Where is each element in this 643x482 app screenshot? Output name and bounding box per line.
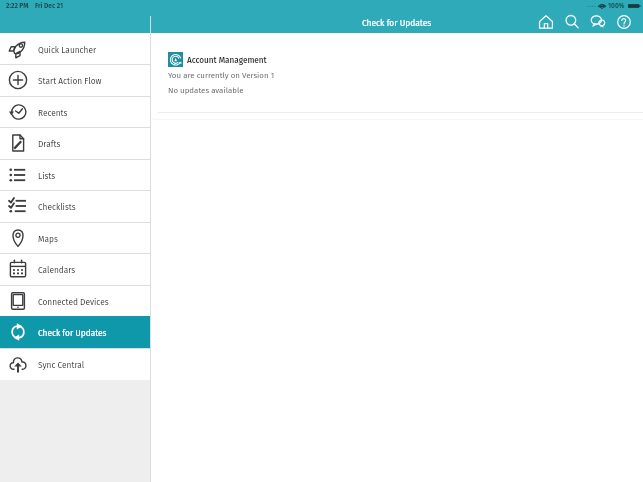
staticText: Recents	[38, 108, 68, 118]
staticText: Calendars	[38, 265, 76, 275]
staticText: Lists	[38, 171, 56, 181]
staticText: Quick Launcher	[38, 45, 97, 55]
button[interactable]: Connected Devices	[0, 285, 150, 317]
staticText: Checklists	[38, 202, 76, 212]
staticText: 100%	[608, 2, 625, 10]
button[interactable]: Search	[559, 13, 585, 30]
button[interactable]: Sync Central	[0, 348, 150, 380]
staticText: Sync Central	[38, 360, 85, 370]
button[interactable]: Help	[611, 13, 637, 30]
button[interactable]: Calendars	[0, 253, 150, 285]
staticText: Fri Dec 21	[35, 2, 64, 10]
button[interactable]: Start Action Flow	[0, 64, 150, 96]
staticText: No updates available	[168, 86, 244, 95]
button[interactable]: Quick Launcher	[0, 33, 150, 64]
button[interactable]: Checklists	[0, 190, 150, 222]
button[interactable]: Drafts	[0, 127, 150, 159]
button[interactable]: Recents	[0, 96, 150, 127]
staticText: Drafts	[38, 139, 61, 149]
staticText: 2:22 PM	[6, 2, 29, 10]
staticText: Check for Updates	[38, 328, 107, 338]
staticText: Connected Devices	[38, 297, 109, 307]
staticText: Check for Updates	[362, 18, 432, 28]
staticText: Maps	[38, 234, 58, 244]
staticText: Start Action Flow	[38, 76, 102, 86]
button[interactable]: Messages	[585, 13, 611, 30]
button[interactable]: Lists	[0, 159, 150, 191]
staticText: Account Management	[187, 55, 267, 65]
button[interactable]: Maps	[0, 222, 150, 254]
button[interactable]: Check for Updates	[0, 316, 150, 348]
staticText: You are currently on Version 1	[168, 71, 275, 80]
button[interactable]: Home	[533, 13, 559, 30]
